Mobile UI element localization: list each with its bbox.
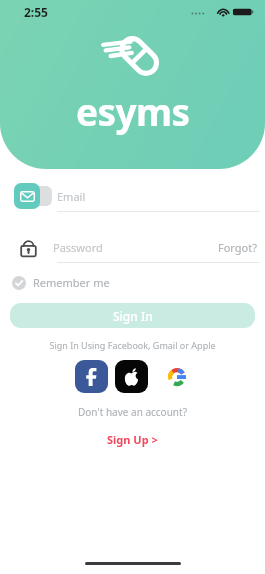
button[interactable]: Forgot? [216,236,259,259]
staticText: Forgot? [218,240,257,255]
button[interactable]: Sign in with Google [164,364,190,390]
staticText: Sign In Using Facebook, Gmail or Apple [0,339,265,351]
button[interactable]: Email [0,181,265,211]
staticText: Email [57,189,259,204]
button[interactable]: Sign in with Apple [115,360,148,393]
staticText: Don't have an account? [0,405,265,419]
staticText: Password [53,240,216,255]
button[interactable]: Password [0,232,265,262]
button[interactable]: Remember me [0,271,120,294]
button[interactable]: Sign in with Facebook [75,360,108,393]
button[interactable]: Sign In [10,303,255,328]
staticText: Sign In [113,308,153,324]
staticText: Remember me [33,275,110,290]
button[interactable]: Sign Up > [99,430,166,449]
staticText: 2:55 [24,4,48,20]
staticText: Sign Up > [107,432,158,447]
staticText: esyms [76,86,190,136]
